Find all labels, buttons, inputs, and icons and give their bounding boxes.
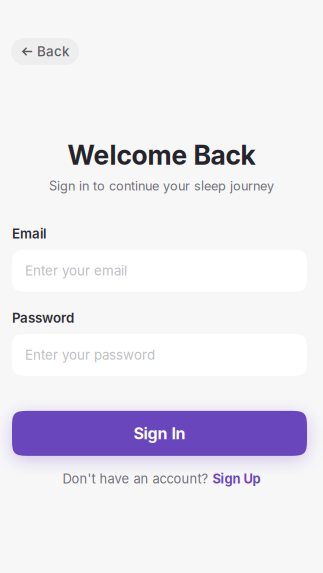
button[interactable]: Enter your email	[12, 250, 307, 292]
staticText: Welcome Back	[67, 139, 255, 171]
button[interactable]: Sign Up	[212, 471, 260, 486]
staticText: Sign Up	[212, 471, 260, 486]
staticText: Sign in to continue your sleep journey	[49, 178, 274, 194]
staticText: Sign In	[133, 424, 185, 443]
button[interactable]: Back	[11, 38, 79, 65]
button[interactable]: Sign In	[12, 411, 307, 456]
staticText: Don't have an account?	[62, 471, 212, 486]
staticText: Enter your password	[25, 347, 155, 363]
staticText: Enter your email	[25, 263, 127, 279]
button[interactable]: Enter your password	[12, 334, 307, 376]
staticText: Email	[12, 226, 46, 242]
staticText: Back	[37, 43, 69, 59]
staticText: Password	[12, 310, 74, 326]
